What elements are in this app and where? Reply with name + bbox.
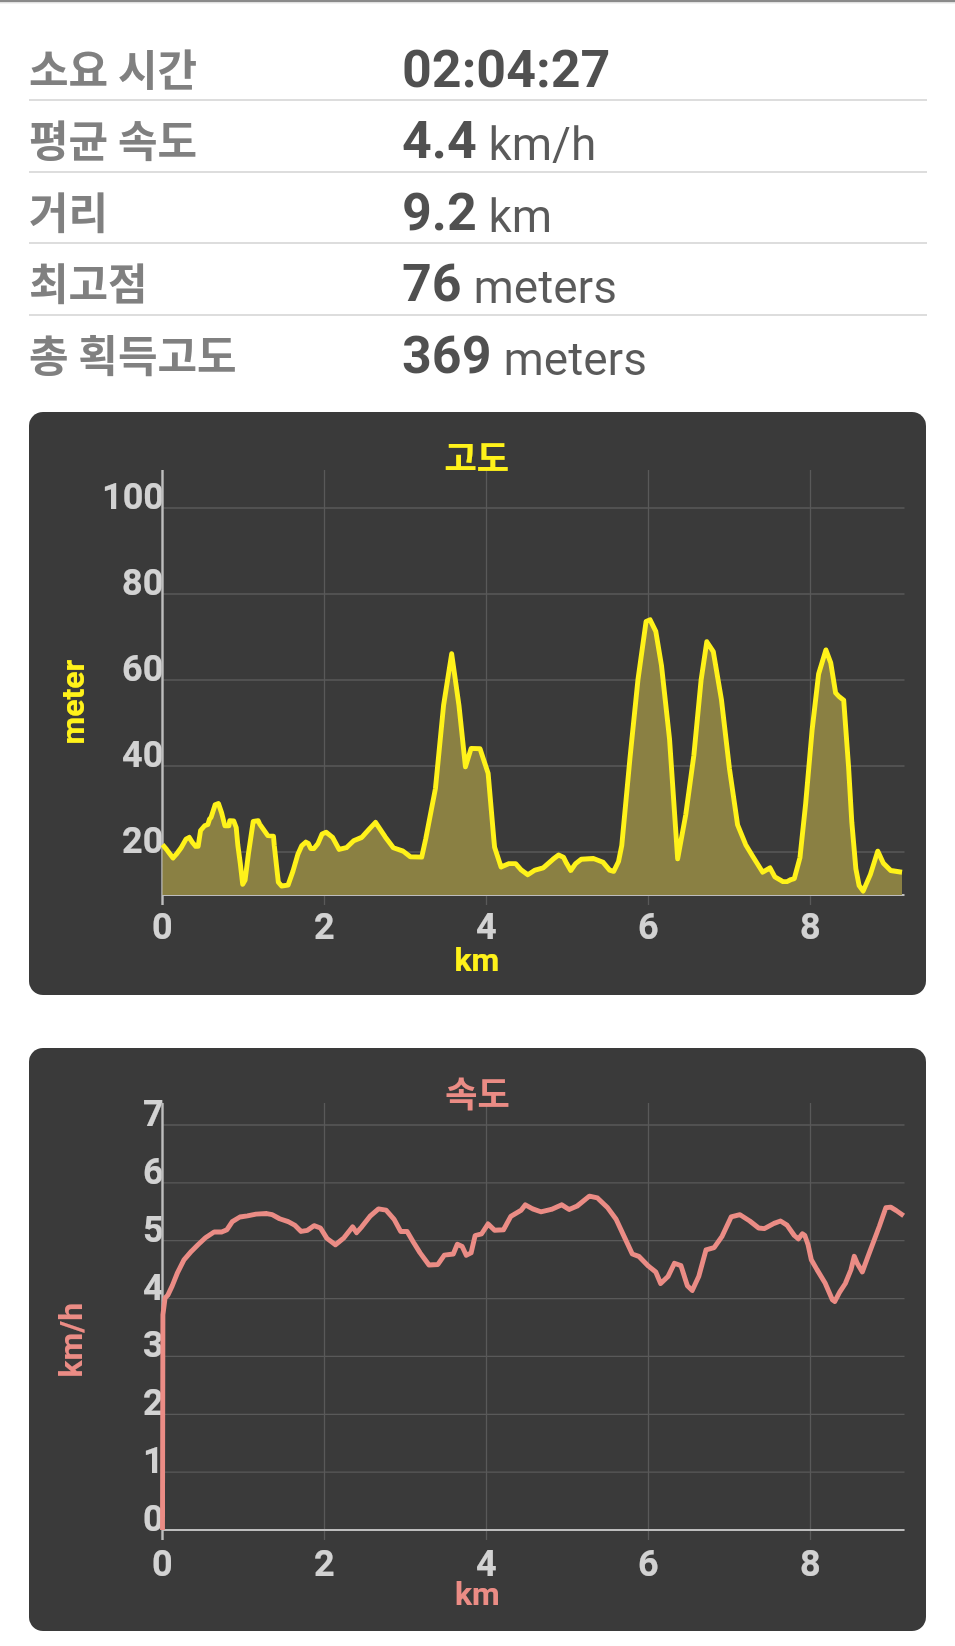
staticText: 369	[402, 325, 492, 386]
staticText: 02:04:27	[402, 39, 611, 100]
staticText: km	[477, 189, 553, 243]
button[interactable]: Speed chart	[29, 1048, 926, 1631]
staticText: 9.2	[402, 182, 477, 243]
staticText: 최고점	[29, 250, 148, 312]
button[interactable]: 거리	[0, 172, 955, 244]
staticText: 평균 속도	[29, 107, 198, 169]
staticText: 4.4	[402, 110, 477, 171]
staticText: km/h	[477, 117, 597, 171]
staticText: meters	[462, 260, 617, 314]
button[interactable]: 평균 속도	[0, 100, 955, 172]
staticText: meters	[492, 332, 647, 386]
staticText: 총 획득고도	[29, 322, 237, 384]
staticText: 76	[402, 253, 462, 314]
staticText: 거리	[29, 179, 109, 241]
button[interactable]: 총 획득고도	[0, 315, 955, 387]
button[interactable]: 최고점	[0, 243, 955, 315]
button[interactable]: Elevation chart	[29, 412, 926, 995]
staticText: 소요 시간	[29, 36, 198, 98]
button[interactable]: 소요 시간	[0, 29, 955, 101]
